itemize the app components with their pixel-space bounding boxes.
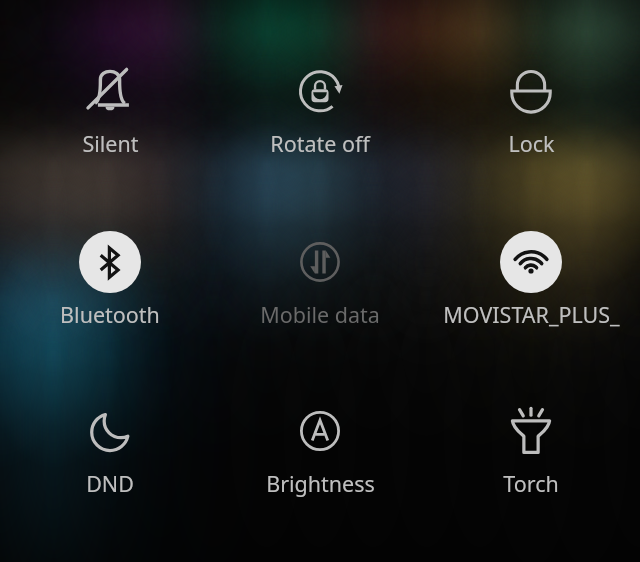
button[interactable]: Brightness xyxy=(220,386,420,504)
staticText: Bluetooth xyxy=(60,300,160,329)
staticText: Rotate off xyxy=(270,129,370,158)
button[interactable]: Lock xyxy=(431,46,631,164)
button[interactable]: Mobile data xyxy=(220,217,420,335)
button[interactable]: Silent xyxy=(10,46,210,164)
button[interactable]: MOVISTAR_PLUS_ xyxy=(431,217,631,335)
staticText: Silent xyxy=(82,129,139,158)
staticText: DND xyxy=(86,469,134,498)
staticText: Lock xyxy=(508,129,555,158)
staticText: Brightness xyxy=(266,469,375,498)
button[interactable]: DND xyxy=(10,386,210,504)
staticText: Mobile data xyxy=(260,300,380,329)
staticText: Torch xyxy=(503,469,559,498)
button[interactable]: Bluetooth xyxy=(10,217,210,335)
button[interactable]: Rotate off xyxy=(220,46,420,164)
button[interactable]: Torch xyxy=(431,386,631,504)
staticText: MOVISTAR_PLUS_ xyxy=(443,300,620,329)
